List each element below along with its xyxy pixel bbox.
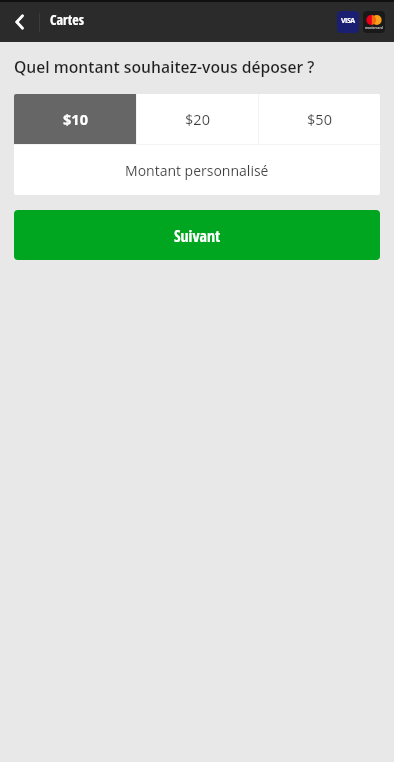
- button[interactable]: Back: [0, 2, 39, 42]
- button[interactable]: $50: [259, 94, 380, 144]
- button[interactable]: Visa card: [337, 11, 359, 33]
- button[interactable]: Montant personnalisé: [14, 145, 380, 195]
- staticText: $10: [63, 110, 88, 130]
- staticText: $20: [185, 110, 210, 130]
- button[interactable]: Suivant: [14, 210, 380, 260]
- staticText: Suivant: [174, 225, 221, 247]
- button[interactable]: Mastercard: [363, 11, 385, 33]
- button[interactable]: $10: [14, 94, 136, 144]
- staticText: Montant personnalisé: [125, 161, 269, 180]
- staticText: mastercard: [365, 26, 383, 30]
- staticText: VISA: [341, 16, 355, 26]
- staticText: Cartes: [50, 10, 84, 29]
- staticText: $50: [307, 110, 332, 130]
- staticText: Quel montant souhaitez-vous déposer ?: [14, 56, 315, 77]
- button[interactable]: $20: [137, 94, 258, 144]
